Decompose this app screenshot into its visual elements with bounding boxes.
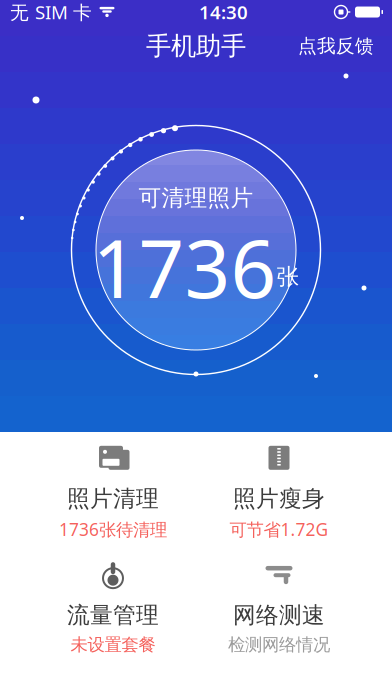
button[interactable]: 照片清理	[30, 434, 196, 549]
staticText: 照片瘦身	[233, 485, 325, 513]
staticText: 可清理照片	[138, 184, 253, 212]
button[interactable]: 网络测速	[196, 549, 362, 665]
button[interactable]: 流量管理	[30, 549, 196, 665]
staticText: 手机助手	[146, 30, 246, 61]
button[interactable]: 照片瘦身	[196, 434, 362, 549]
staticText: 点我反馈	[298, 34, 374, 57]
button[interactable]: 点我反馈	[286, 25, 386, 66]
staticText: 照片清理	[67, 485, 159, 513]
staticText: 张	[276, 263, 299, 291]
staticText: 14:30	[199, 0, 248, 24]
staticText: 可节省1.72G	[229, 518, 328, 541]
staticText: 无 SIM 卡	[10, 0, 92, 24]
staticText: 1736	[92, 214, 276, 320]
staticText: 流量管理	[67, 601, 159, 629]
staticText: 检测网络情况	[228, 634, 330, 655]
staticText: 网络测速	[233, 601, 325, 629]
staticText: 1736张待清理	[59, 518, 167, 541]
staticText: 未设置套餐	[70, 634, 155, 655]
